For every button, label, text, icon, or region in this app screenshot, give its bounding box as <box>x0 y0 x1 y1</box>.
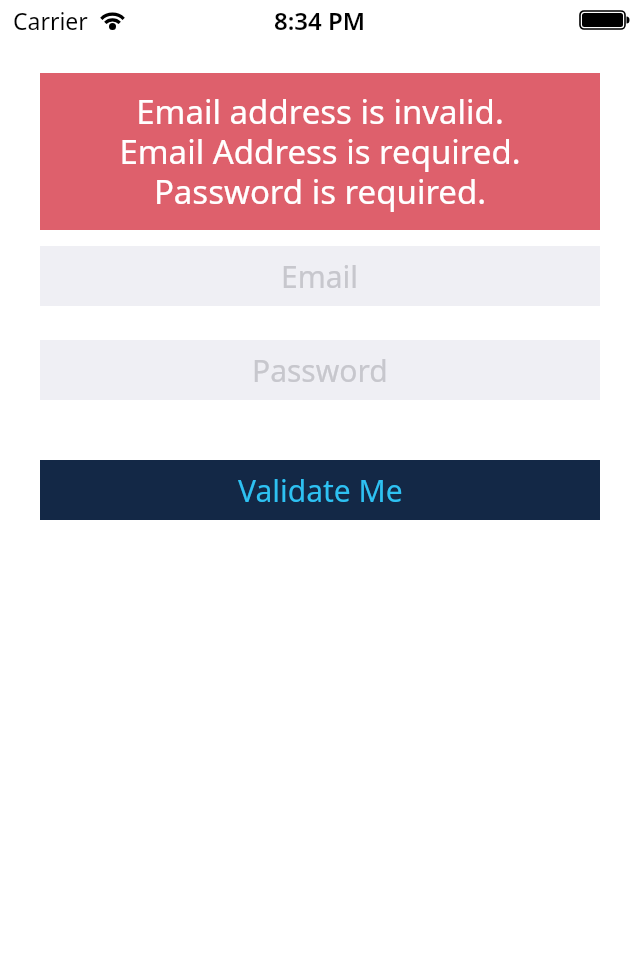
button[interactable]: Password <box>40 340 600 400</box>
staticText: Password <box>252 350 388 391</box>
staticText: Email <box>281 256 359 297</box>
staticText: Email address is invalid. Email Address … <box>119 89 521 214</box>
button[interactable]: Validate Me <box>40 460 600 520</box>
button[interactable]: Email <box>40 246 600 306</box>
staticText: Carrier <box>13 5 88 36</box>
staticText: 8:34 PM <box>274 4 366 37</box>
staticText: Validate Me <box>238 470 403 511</box>
